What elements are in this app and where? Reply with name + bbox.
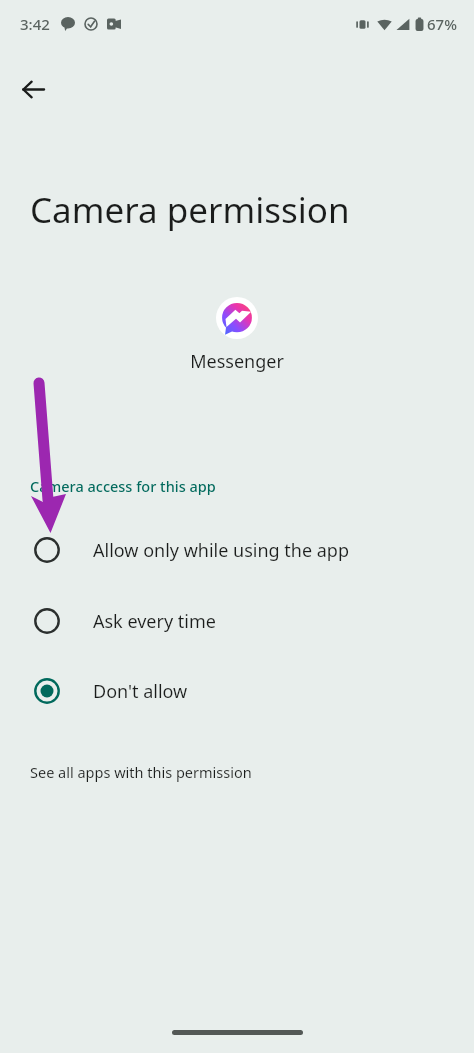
staticText: See all apps with this permission xyxy=(30,762,252,782)
staticText: Camera permission xyxy=(30,186,350,234)
staticText: Camera access for this app xyxy=(30,476,216,496)
button[interactable]: Ask every time xyxy=(0,593,474,649)
staticText: 3:42 xyxy=(20,14,50,34)
staticText: 67% xyxy=(427,14,457,34)
button[interactable]: Back xyxy=(9,65,57,113)
button[interactable]: Don't allow xyxy=(0,663,474,719)
button[interactable]: See all apps with this permission xyxy=(0,752,474,792)
staticText: Messenger xyxy=(190,349,284,374)
staticText: Allow only while using the app xyxy=(93,538,350,563)
staticText: Ask every time xyxy=(93,609,216,634)
staticText: Don't allow xyxy=(93,679,188,704)
button[interactable]: Allow only while using the app xyxy=(0,522,474,578)
